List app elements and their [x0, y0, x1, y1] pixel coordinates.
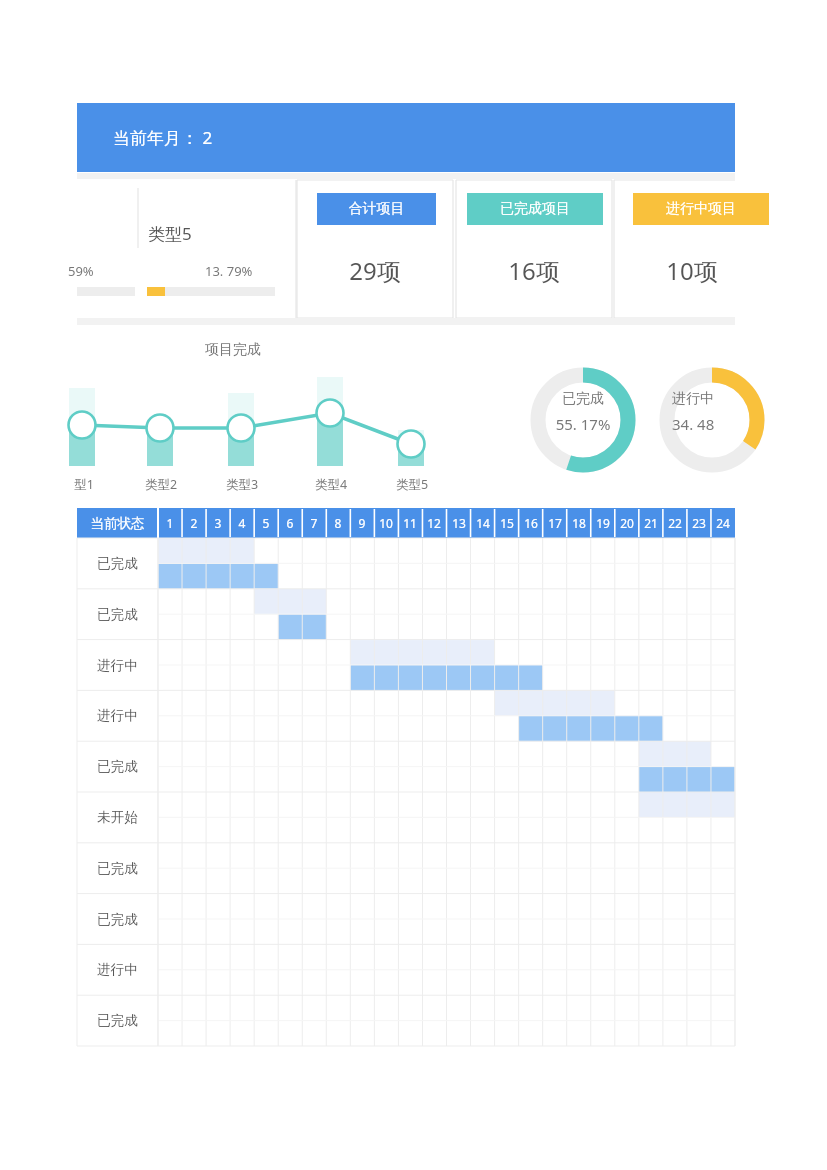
staticText: 已完成 — [77, 1012, 158, 1029]
staticText: 12 — [422, 515, 446, 531]
staticText: 21 — [639, 515, 663, 531]
staticText: 59% — [68, 262, 827, 280]
staticText: 进行中 — [672, 390, 752, 408]
staticText: 已完成 — [543, 390, 623, 408]
button[interactable]: 当前状态 — [77, 508, 158, 538]
staticText: 20 — [615, 515, 639, 531]
button[interactable]: 进行中 — [77, 944, 158, 995]
button[interactable]: 已完成 — [77, 843, 158, 894]
staticText: 22 — [663, 515, 687, 531]
staticText: 14 — [471, 515, 495, 531]
staticText: 当前状态 — [77, 515, 158, 532]
staticText: 类型5 — [388, 476, 436, 493]
button[interactable]: 已完成项目 — [456, 180, 612, 318]
staticText: 2 — [182, 515, 206, 531]
staticText: 9 — [350, 515, 374, 531]
staticText: 进行中项目 — [633, 200, 769, 218]
staticText: 11 — [398, 515, 422, 531]
staticText: 10项 — [614, 254, 770, 287]
staticText: 7 — [302, 515, 326, 531]
button[interactable]: 进行中 — [77, 690, 158, 741]
button[interactable]: 进行中 — [672, 390, 752, 434]
staticText: 5 — [254, 515, 278, 531]
staticText: 已完成 — [77, 606, 158, 623]
button[interactable]: 已完成 — [77, 589, 158, 640]
button[interactable]: 已完成 — [77, 741, 158, 792]
button[interactable]: 已完成 — [77, 995, 158, 1046]
staticText: 进行中 — [77, 707, 158, 724]
staticText: 23 — [687, 515, 711, 531]
staticText: 进行中 — [77, 657, 158, 674]
staticText: 进行中 — [77, 961, 158, 978]
staticText: 29项 — [297, 254, 453, 287]
staticText: 类型4 — [307, 476, 355, 493]
staticText: 类型3 — [218, 476, 266, 493]
button[interactable]: 未开始 — [77, 792, 158, 843]
staticText: 类型2 — [137, 476, 185, 493]
button[interactable]: 进行中 — [77, 640, 158, 691]
staticText: 55. 17% — [543, 414, 623, 434]
staticText: 型1 — [60, 476, 108, 493]
staticText: 15 — [495, 515, 519, 531]
button[interactable]: 已完成 — [543, 390, 623, 434]
staticText: 10 — [374, 515, 398, 531]
staticText: 1 — [158, 515, 182, 531]
staticText: 17 — [543, 515, 567, 531]
staticText: 类型5 — [148, 222, 827, 245]
staticText: 当前年月： 2 — [113, 126, 735, 149]
staticText: 8 — [326, 515, 350, 531]
staticText: 19 — [591, 515, 615, 531]
button[interactable]: 当前年月： 2 — [77, 103, 735, 172]
staticText: 13 — [447, 515, 471, 531]
staticText: 4 — [230, 515, 254, 531]
staticText: 已完成项目 — [467, 200, 603, 218]
button[interactable]: 进行中项目 — [614, 180, 770, 318]
staticText: 已完成 — [77, 758, 158, 775]
staticText: 未开始 — [77, 809, 158, 826]
staticText: 16 — [519, 515, 543, 531]
button[interactable]: 合计项目 — [297, 180, 453, 318]
staticText: 已完成 — [77, 911, 158, 928]
button[interactable]: 已完成 — [77, 538, 158, 589]
staticText: 已完成 — [77, 555, 158, 572]
staticText: 已完成 — [77, 860, 158, 877]
staticText: 18 — [567, 515, 591, 531]
staticText: 6 — [278, 515, 302, 531]
staticText: 13. 79% — [205, 262, 827, 280]
button[interactable]: 已完成 — [77, 894, 158, 945]
staticText: 24 — [711, 515, 735, 531]
staticText: 项目完成 — [205, 341, 827, 359]
staticText: 16项 — [456, 254, 612, 287]
staticText: 合计项目 — [317, 200, 436, 218]
staticText: 34. 48 — [672, 414, 752, 434]
staticText: 3 — [206, 515, 230, 531]
